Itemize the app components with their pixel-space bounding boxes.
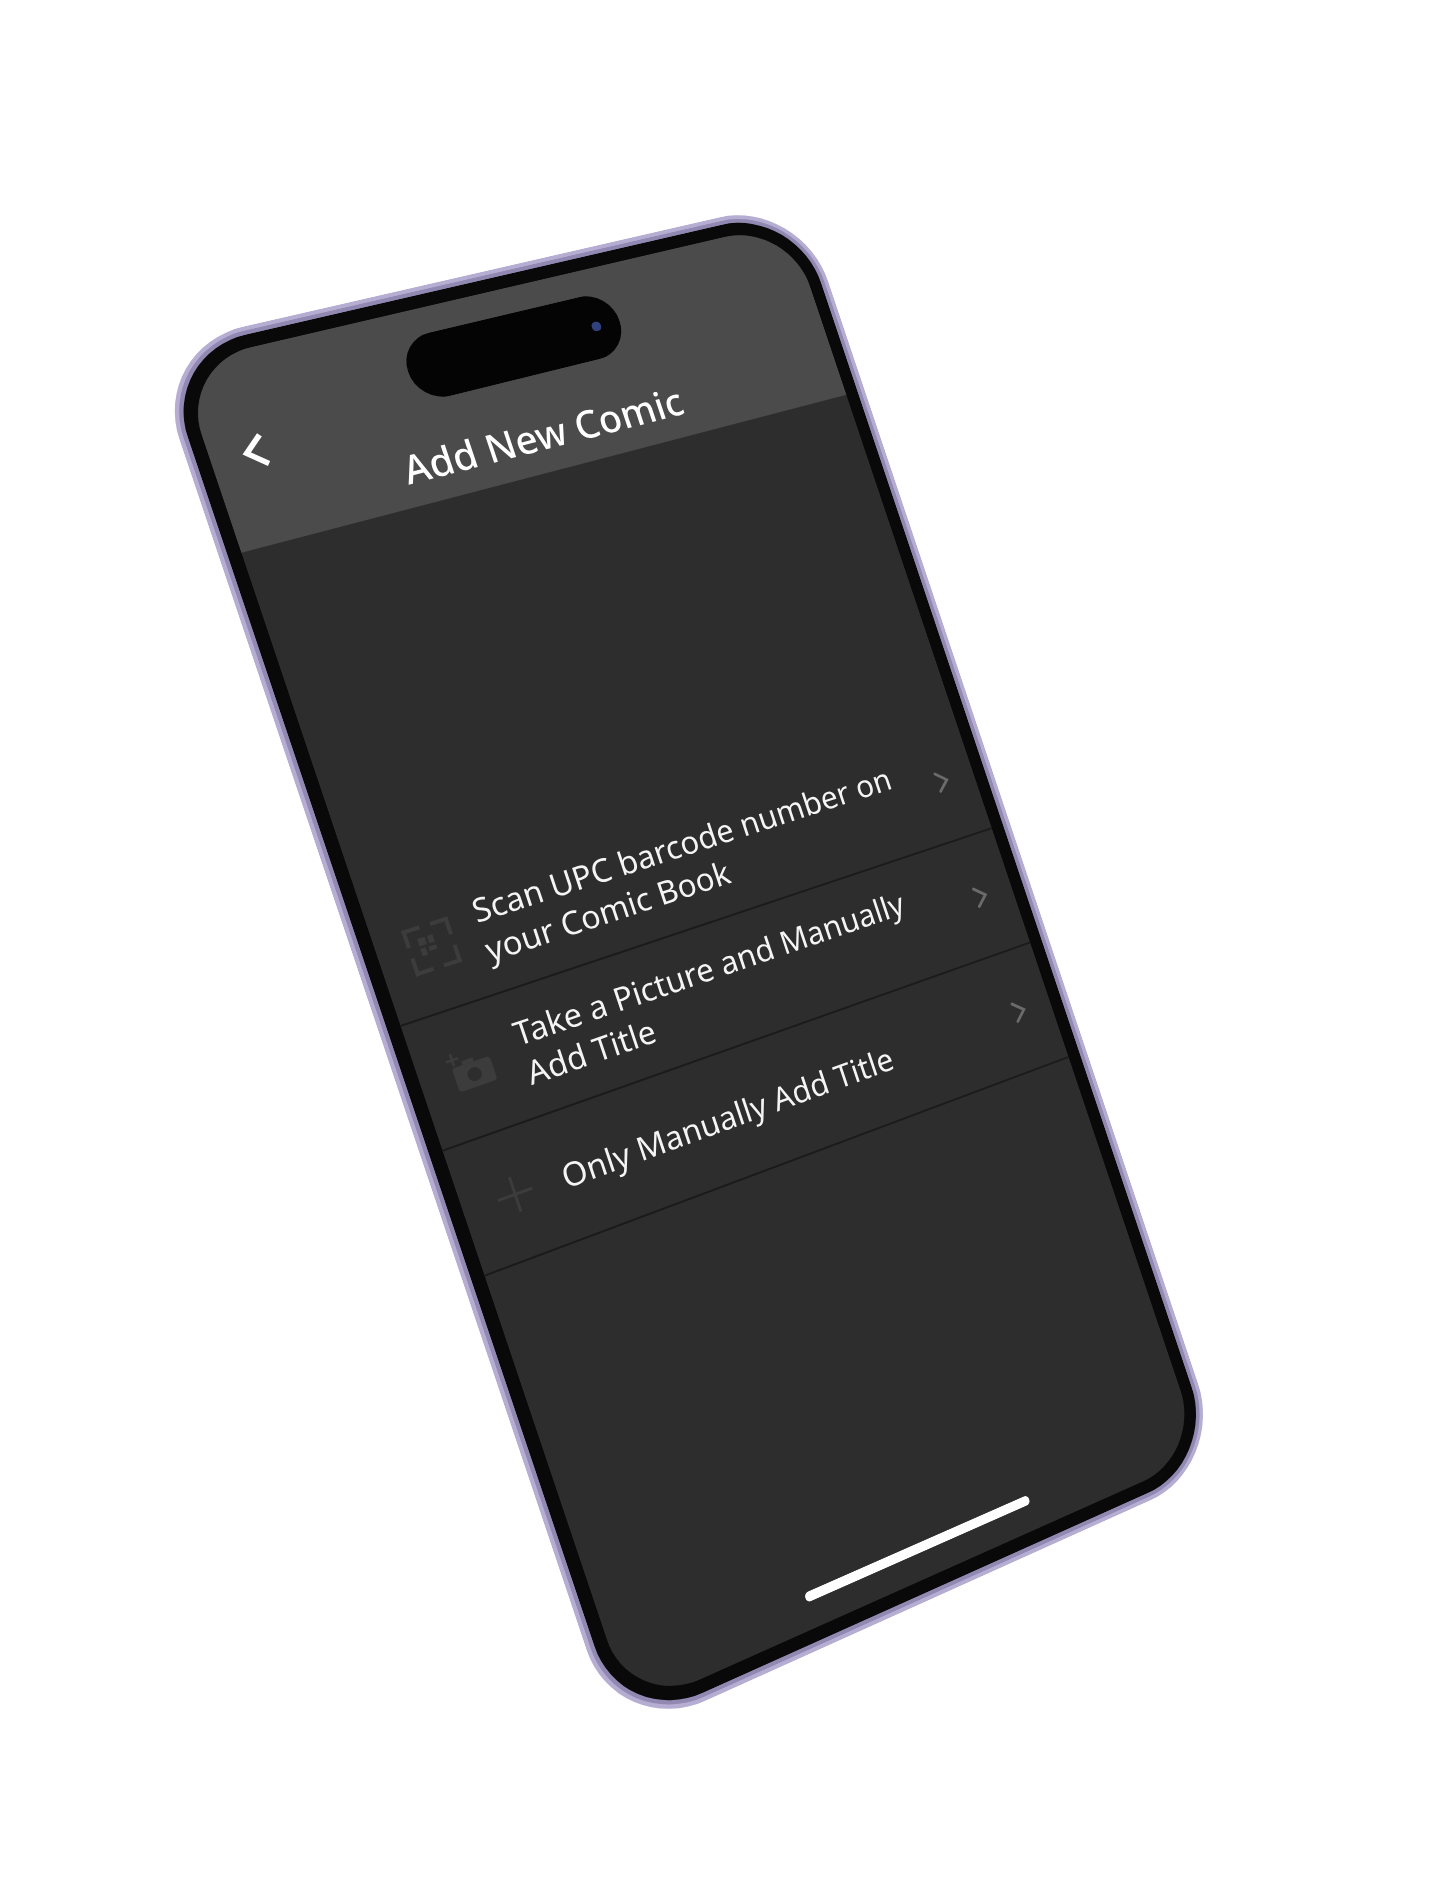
staticText: Take a Picture and Manually Add Title (507, 865, 972, 1095)
button[interactable]: Scan UPC barcode number on your Comic Bo… (359, 714, 992, 1025)
staticText: Scan UPC barcode number on your Comic Bo… (466, 749, 933, 972)
staticText: Only Manually Add Title (555, 998, 1005, 1199)
staticText: Add New Comic (395, 374, 690, 495)
button[interactable]: Only Manually Add Title (443, 943, 1068, 1275)
button[interactable]: Take a Picture and Manually Add Title (401, 829, 1030, 1150)
button[interactable]: Back (197, 400, 311, 504)
